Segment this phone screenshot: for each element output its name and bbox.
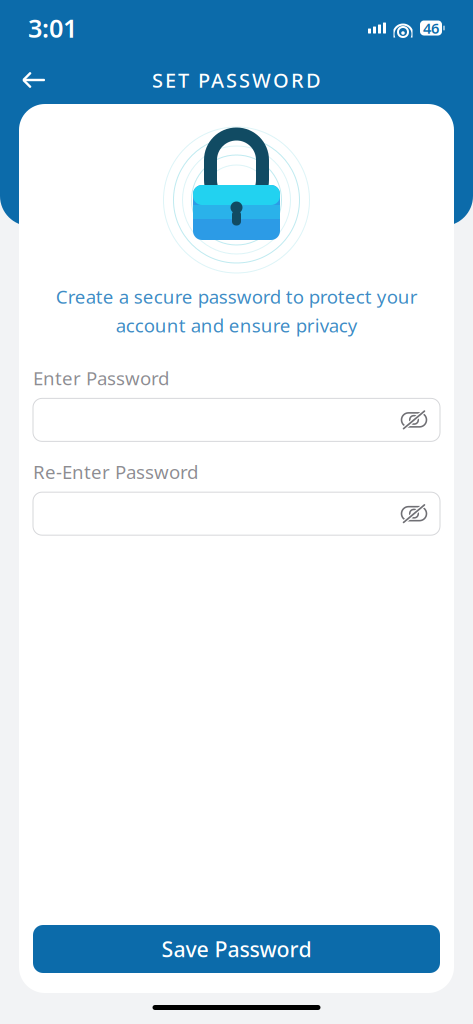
staticText: SET PASSWORD (152, 67, 321, 93)
staticText: Create a secure password to protect your… (55, 284, 417, 338)
staticText: 3:01 (28, 11, 77, 45)
button[interactable]: Save Password (33, 925, 440, 973)
button[interactable]: Show Re-Enter Password (394, 494, 434, 534)
staticText: Save Password (161, 935, 311, 963)
button[interactable]: Show Enter Password (394, 400, 434, 440)
staticText: 46 (423, 18, 439, 38)
staticText: Enter Password (33, 366, 169, 390)
button[interactable]: Back (12, 58, 56, 102)
staticText: Re-Enter Password (33, 459, 198, 484)
